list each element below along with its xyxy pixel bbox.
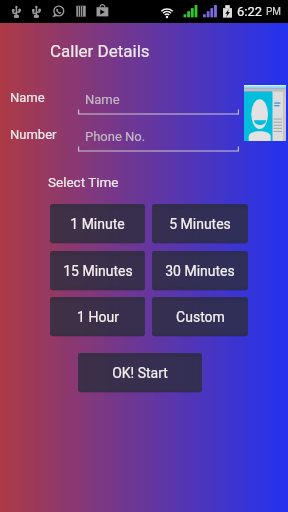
button[interactable]: Custom — [152, 297, 248, 336]
button[interactable]: 15 Minutes — [50, 251, 145, 290]
button[interactable]: Pick contact — [244, 85, 286, 141]
staticText: Name — [10, 90, 45, 105]
staticText: Name — [85, 92, 120, 107]
staticText: PM — [266, 6, 282, 18]
staticText: 6:22 — [237, 4, 263, 19]
staticText: 5 Minutes — [169, 216, 231, 232]
staticText: Caller Details — [50, 41, 150, 61]
staticText: OK! Start — [112, 365, 168, 381]
staticText: 1 Minute — [70, 216, 125, 232]
staticText: 15 Minutes — [63, 263, 133, 279]
staticText: 1 Hour — [77, 309, 119, 325]
button[interactable]: 1 Hour — [50, 297, 145, 336]
staticText: Phone No. — [85, 129, 146, 144]
staticText: 30 Minutes — [165, 263, 235, 279]
button[interactable]: 30 Minutes — [152, 251, 248, 290]
button[interactable]: 1 Minute — [50, 204, 145, 243]
button[interactable]: OK! Start — [78, 353, 202, 392]
staticText: Custom — [176, 309, 225, 325]
button[interactable]: Name — [78, 89, 239, 115]
staticText: Select Time — [48, 174, 119, 190]
button[interactable]: 5 Minutes — [152, 204, 248, 243]
staticText: Number — [10, 127, 57, 142]
button[interactable]: Phone No. — [78, 126, 239, 152]
